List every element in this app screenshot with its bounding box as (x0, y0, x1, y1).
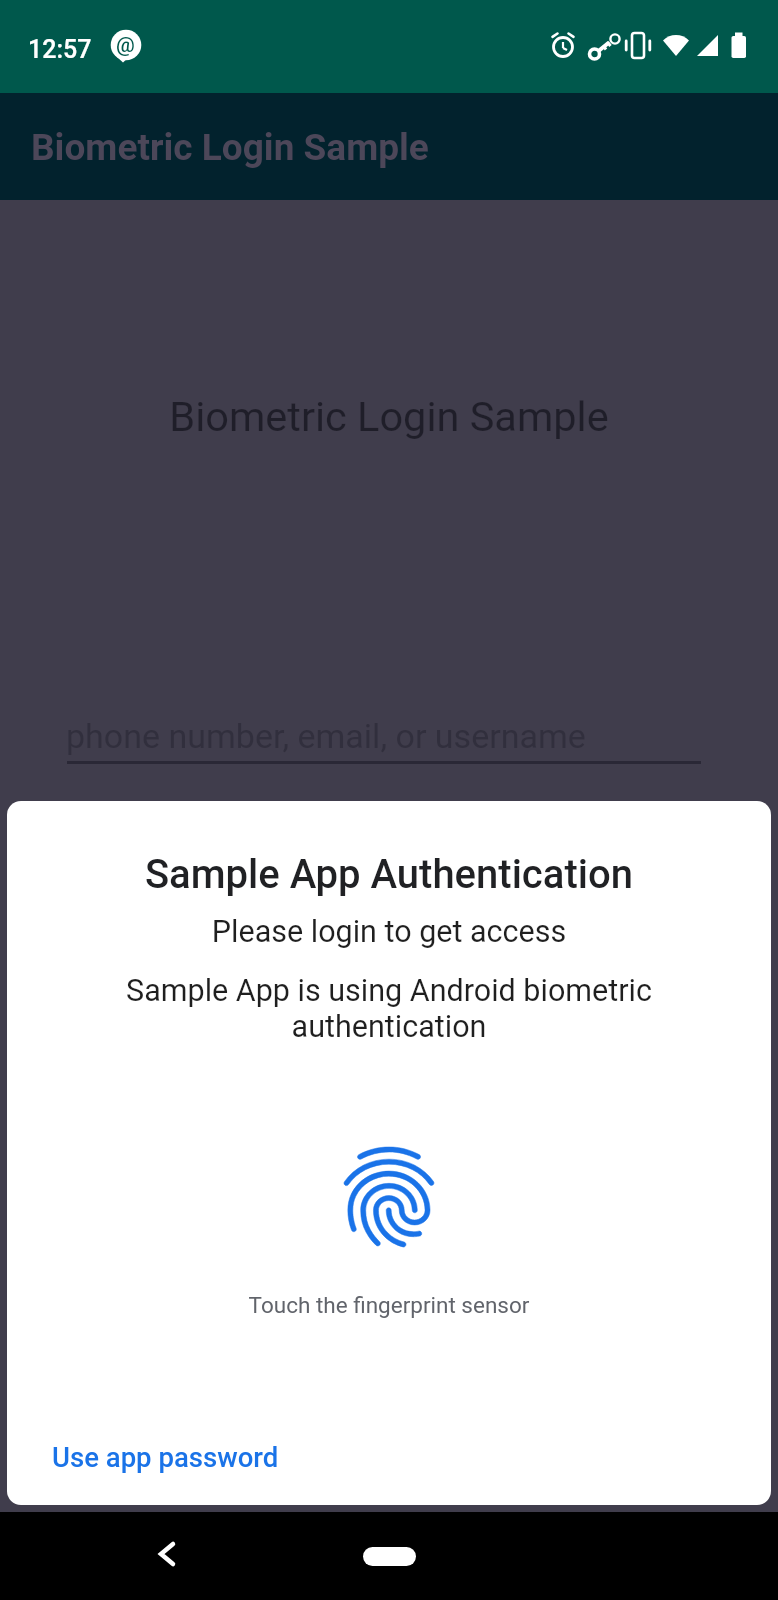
staticText: Use app password (52, 1441, 279, 1473)
staticText: Please login to get access (7, 914, 771, 950)
staticText: 12:57 (28, 35, 92, 64)
staticText: Biometric Login Sample (0, 392, 778, 441)
staticText: Touch the fingerprint sensor (7, 1292, 771, 1318)
staticText: phone number, email, or username (66, 716, 586, 756)
staticText: Biometric Login Sample (31, 126, 429, 169)
button[interactable] (363, 1547, 416, 1566)
staticText: Sample App is using Android biometric au… (7, 973, 771, 1045)
staticText: @ (116, 33, 135, 58)
button[interactable]: Use app password (31, 1429, 300, 1485)
staticText: Sample App Authentication (7, 851, 771, 898)
button[interactable] (146, 1532, 190, 1576)
